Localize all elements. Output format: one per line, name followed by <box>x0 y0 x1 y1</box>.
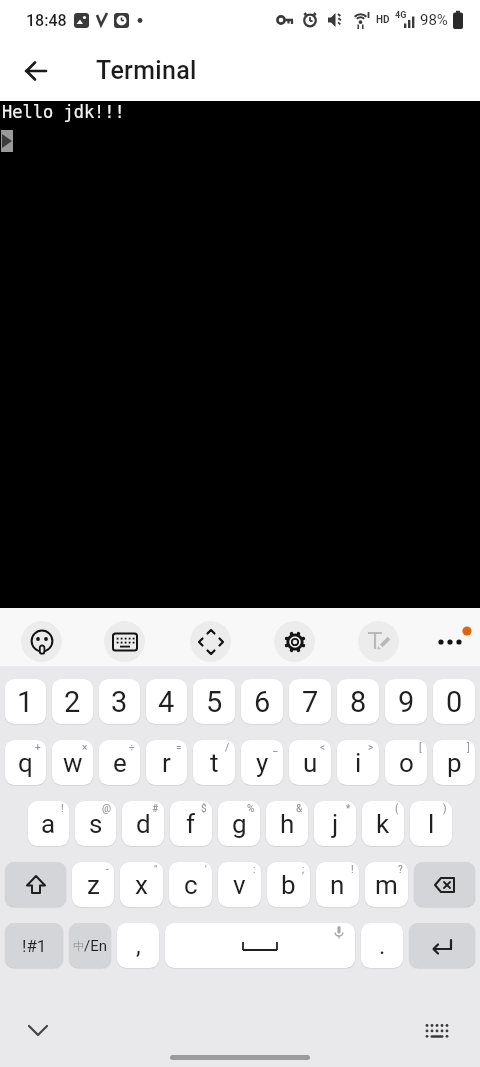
button[interactable] <box>424 1022 450 1042</box>
staticText: ] <box>467 742 470 754</box>
staticText: b <box>281 870 296 900</box>
staticText: s <box>89 809 103 839</box>
button[interactable]: m <box>365 862 408 907</box>
button[interactable]: c <box>169 862 212 907</box>
staticText: $ <box>201 803 207 815</box>
staticText: : <box>253 864 256 876</box>
staticText: g <box>232 809 247 839</box>
staticText: 中 <box>73 939 84 953</box>
button[interactable]: 中 <box>69 923 111 968</box>
staticText: 18:48 <box>26 11 67 30</box>
staticText: i <box>355 748 362 778</box>
button[interactable]: a <box>28 801 69 846</box>
staticText: , <box>136 932 141 960</box>
staticText: a <box>41 809 56 839</box>
button[interactable] <box>429 621 470 662</box>
button[interactable]: n <box>316 862 359 907</box>
button[interactable]: l <box>410 801 452 846</box>
staticText: ! <box>351 864 354 876</box>
button[interactable]: o <box>385 740 427 785</box>
staticText: < <box>320 742 326 754</box>
button[interactable]: k <box>362 801 404 846</box>
staticText: & <box>296 803 303 815</box>
button[interactable]: !#1 <box>5 923 63 968</box>
staticText: ' <box>205 864 207 876</box>
button[interactable]: , <box>117 923 159 968</box>
button[interactable] <box>274 621 315 662</box>
button[interactable]: e <box>99 740 140 785</box>
button[interactable]: 7 <box>289 679 331 724</box>
button[interactable]: 4 <box>146 679 187 724</box>
button[interactable]: q <box>5 740 46 785</box>
button[interactable]: w <box>52 740 93 785</box>
button[interactable] <box>104 621 145 662</box>
button[interactable] <box>5 862 66 907</box>
button[interactable] <box>409 923 475 968</box>
staticText: . <box>379 932 386 960</box>
staticText: v <box>233 870 246 900</box>
staticText: j <box>332 809 339 839</box>
staticText: y <box>256 748 269 778</box>
button[interactable] <box>190 621 231 662</box>
staticText: p <box>447 748 462 778</box>
button[interactable] <box>21 621 62 662</box>
button[interactable]: 8 <box>337 679 379 724</box>
staticText: 7 <box>302 685 319 719</box>
staticText: _ <box>273 742 278 754</box>
staticText: 0 <box>446 685 463 719</box>
staticText: d <box>136 809 151 839</box>
button[interactable]: . <box>361 923 403 968</box>
staticText: HD <box>376 14 390 26</box>
button[interactable]: b <box>267 862 310 907</box>
button[interactable]: r <box>146 740 187 785</box>
button[interactable]: z <box>72 862 114 907</box>
staticText: f <box>186 809 196 839</box>
staticText: [ <box>419 742 422 754</box>
staticText: r <box>162 748 171 778</box>
button[interactable]: 3 <box>99 679 140 724</box>
button[interactable]: h <box>266 801 308 846</box>
button[interactable] <box>358 621 399 662</box>
staticText: /En <box>84 937 107 955</box>
staticText: !#1 <box>22 936 47 956</box>
button[interactable]: 1 <box>5 679 46 724</box>
button[interactable]: f <box>170 801 212 846</box>
button[interactable]: p <box>433 740 475 785</box>
button[interactable] <box>165 923 355 968</box>
staticText: 98% <box>420 11 448 29</box>
staticText: ! <box>61 803 64 815</box>
staticText: m <box>375 870 398 900</box>
button[interactable] <box>26 1018 50 1042</box>
staticText: # <box>152 803 159 815</box>
staticText: - <box>106 864 109 876</box>
button[interactable]: v <box>218 862 261 907</box>
button[interactable]: x <box>120 862 163 907</box>
button[interactable]: 9 <box>385 679 427 724</box>
staticText: h <box>280 809 295 839</box>
button[interactable]: 2 <box>52 679 93 724</box>
button[interactable] <box>16 51 56 91</box>
button[interactable]: i <box>337 740 379 785</box>
staticText: w <box>63 748 83 778</box>
staticText: + <box>35 742 41 754</box>
button[interactable]: j <box>314 801 356 846</box>
button[interactable]: 0 <box>433 679 475 724</box>
staticText: 4G <box>395 10 407 21</box>
button[interactable]: u <box>289 740 331 785</box>
staticText: e <box>113 748 127 778</box>
staticText: × <box>82 742 88 754</box>
staticText: l <box>428 809 435 839</box>
button[interactable]: y <box>241 740 283 785</box>
staticText: z <box>87 870 100 900</box>
staticText: 8 <box>350 685 367 719</box>
staticText: 3 <box>111 685 128 719</box>
staticText: ; <box>302 864 305 876</box>
button[interactable] <box>414 862 475 907</box>
button[interactable]: g <box>218 801 260 846</box>
staticText: 5 <box>206 685 223 719</box>
button[interactable]: d <box>122 801 164 846</box>
button[interactable]: 5 <box>193 679 235 724</box>
button[interactable]: 6 <box>241 679 283 724</box>
button[interactable]: s <box>75 801 116 846</box>
button[interactable]: t <box>193 740 235 785</box>
